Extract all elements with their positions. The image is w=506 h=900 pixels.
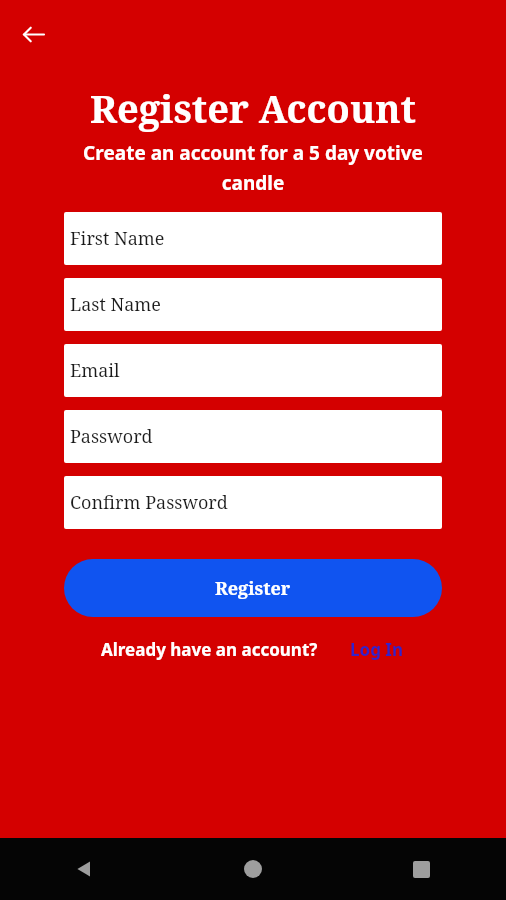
staticText: Password	[70, 424, 153, 449]
staticText: Create an account for a 5 day votive can…	[62, 140, 444, 195]
button[interactable]: First Name	[64, 212, 442, 265]
button[interactable]: Back	[11, 12, 55, 56]
staticText: Register Account	[0, 82, 506, 134]
button[interactable]: Home	[168, 838, 337, 900]
button[interactable]: Confirm Password	[64, 476, 442, 529]
staticText: First Name	[70, 226, 165, 251]
staticText: Register	[215, 576, 291, 601]
button[interactable]: Email	[64, 344, 442, 397]
staticText: Confirm Password	[70, 490, 228, 515]
button[interactable]: Back	[0, 838, 168, 900]
staticText: Already have an account?	[101, 638, 318, 661]
button[interactable]: Password	[64, 410, 442, 463]
button[interactable]: Register	[64, 559, 442, 617]
button[interactable]: Recents	[337, 838, 506, 900]
staticText: Last Name	[70, 292, 161, 317]
button[interactable]: Log In	[348, 636, 405, 663]
staticText: Log In	[350, 638, 403, 661]
staticText: Email	[70, 358, 120, 383]
button[interactable]: Last Name	[64, 278, 442, 331]
